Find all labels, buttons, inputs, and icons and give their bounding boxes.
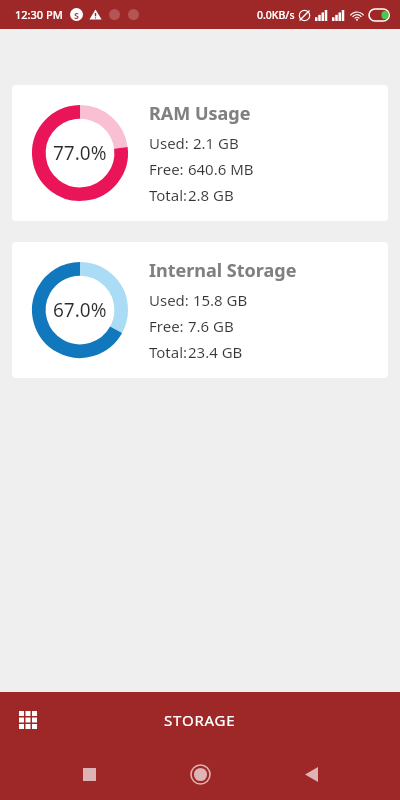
button[interactable]: Home: [178, 752, 222, 796]
staticText: S: [74, 9, 79, 21]
staticText: RAM Usage: [149, 101, 251, 126]
button[interactable]: Apps: [8, 700, 48, 740]
staticText: 23.4 GB: [188, 342, 243, 362]
staticText: Internal Storage: [149, 258, 297, 283]
staticText: 640.6 MB: [184, 159, 254, 179]
button[interactable]: Back: [289, 752, 333, 796]
button[interactable]: 77.0%: [12, 85, 388, 221]
staticText: 12:30 PM: [15, 7, 63, 22]
staticText: 7.6 GB: [184, 316, 234, 336]
staticText: 67.0%: [53, 297, 107, 323]
staticText: Used:: [149, 133, 189, 153]
staticText: Used:: [149, 290, 189, 310]
button[interactable]: 67.0%: [12, 242, 388, 378]
staticText: STORAGE: [164, 710, 236, 730]
staticText: 2.1 GB: [189, 133, 239, 153]
staticText: 15.8 GB: [189, 290, 248, 310]
button[interactable]: Recent apps: [67, 752, 111, 796]
staticText: 77.0%: [53, 140, 107, 166]
staticText: 0.0KB/s: [257, 8, 295, 22]
staticText: Total:: [149, 185, 188, 205]
staticText: Free:: [149, 316, 184, 336]
staticText: 2.8 GB: [188, 185, 234, 205]
staticText: Free:: [149, 159, 184, 179]
staticText: Total:: [149, 342, 188, 362]
